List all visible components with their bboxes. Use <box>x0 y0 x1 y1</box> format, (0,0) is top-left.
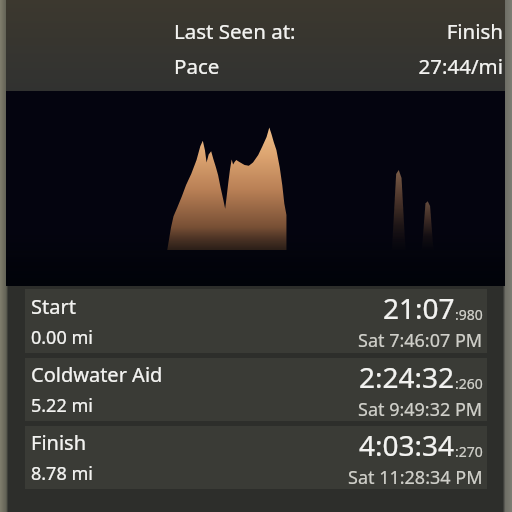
staticText: 0.00 mi <box>31 325 93 350</box>
staticText: Last Seen at: <box>174 17 296 45</box>
staticText: Finish <box>31 429 86 456</box>
staticText: Sat 11:28:34 PM <box>348 465 483 489</box>
staticText: Sat 7:46:07 PM <box>358 328 483 353</box>
staticText: :980 <box>455 305 483 324</box>
staticText: 8.78 mi <box>31 461 93 486</box>
button[interactable]: Elevation graph <box>6 91 505 286</box>
staticText: :260 <box>455 374 483 393</box>
button[interactable]: Start <box>25 289 487 353</box>
staticText: 27:44/mi <box>418 52 503 80</box>
staticText: 5.22 mi <box>31 393 93 418</box>
staticText: Start <box>31 293 76 320</box>
button[interactable]: Coldwater Aid <box>25 358 487 421</box>
button[interactable]: Finish <box>25 426 487 489</box>
staticText: 21:07 <box>383 289 455 327</box>
staticText: 2:24:32 <box>359 358 455 396</box>
staticText: Sat 9:49:32 PM <box>358 397 483 421</box>
staticText: Finish <box>446 17 503 45</box>
staticText: Pace <box>174 52 220 80</box>
staticText: 4:03:34 <box>359 426 455 464</box>
staticText: Coldwater Aid <box>31 361 163 388</box>
staticText: :270 <box>455 442 483 461</box>
